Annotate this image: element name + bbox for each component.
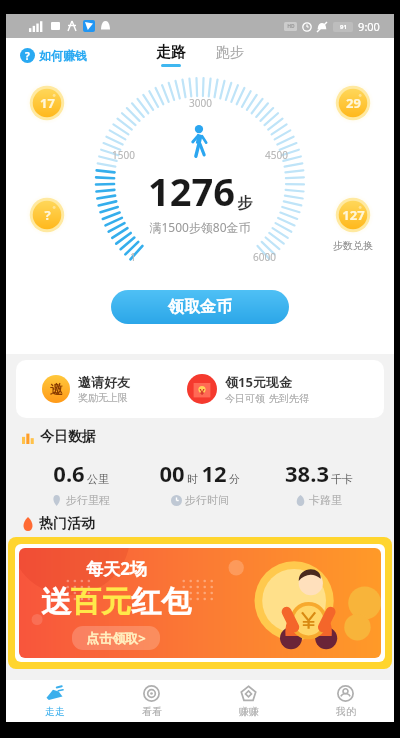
staticText: 送 bbox=[41, 583, 71, 621]
staticText: 先到先得 bbox=[269, 392, 309, 405]
staticText: 奖励无上限 bbox=[78, 391, 128, 404]
button[interactable]: 金币 29 bbox=[332, 82, 374, 124]
staticText: 4500 bbox=[265, 148, 288, 162]
staticText: 12 bbox=[201, 458, 227, 488]
staticText: 91 bbox=[340, 23, 347, 31]
staticText: 步 bbox=[237, 194, 252, 213]
button[interactable]: 金币 17 bbox=[26, 82, 68, 124]
staticText: 今日可领 bbox=[225, 392, 265, 405]
staticText: 每天2场 bbox=[86, 557, 147, 580]
staticText: 6000 bbox=[253, 250, 276, 264]
staticText: 我的 bbox=[336, 705, 356, 718]
button[interactable]: 38.3 bbox=[259, 458, 378, 507]
staticText: 走走 bbox=[45, 705, 65, 718]
staticText: 1276 bbox=[148, 165, 235, 217]
staticText: ? bbox=[25, 49, 30, 63]
button[interactable]: 邀 bbox=[16, 360, 187, 418]
staticText: 分 bbox=[229, 472, 240, 486]
staticText: 点击领取> bbox=[86, 629, 146, 647]
staticText: 00 bbox=[159, 458, 185, 488]
staticText: 如何赚钱 bbox=[39, 48, 87, 63]
staticText: 看看 bbox=[142, 705, 162, 718]
button[interactable]: 走路 bbox=[156, 43, 186, 67]
staticText: 热门活动 bbox=[39, 515, 95, 533]
button[interactable]: 走走 bbox=[6, 680, 103, 722]
staticText: 邀请好友 bbox=[78, 374, 130, 390]
staticText: 38.3 bbox=[285, 458, 329, 488]
button[interactable]: 我的 bbox=[297, 680, 394, 722]
button[interactable]: 金币 ? bbox=[26, 194, 68, 236]
button[interactable]: 赚赚 bbox=[200, 680, 297, 722]
staticText: 千卡 bbox=[331, 472, 353, 486]
staticText: 127 bbox=[342, 206, 365, 224]
staticText: 卡路里 bbox=[309, 493, 342, 507]
staticText: 29 bbox=[346, 94, 361, 112]
staticText: 步行里程 bbox=[66, 493, 110, 507]
staticText: 0.6 bbox=[53, 458, 85, 488]
button[interactable]: ¥ bbox=[187, 360, 384, 418]
staticText: ? bbox=[44, 206, 51, 224]
staticText: 走路 bbox=[156, 43, 186, 62]
button[interactable]: 领取金币 bbox=[111, 290, 289, 324]
button[interactable]: 0.6 bbox=[22, 458, 140, 507]
staticText: 领取金币 bbox=[168, 297, 232, 317]
staticText: 1 bbox=[130, 250, 136, 264]
staticText: 邀 bbox=[50, 381, 63, 397]
staticText: 3000 bbox=[189, 96, 212, 110]
button[interactable]: ? bbox=[20, 48, 87, 63]
staticText: HD bbox=[287, 23, 295, 30]
staticText: 17 bbox=[40, 94, 55, 112]
button[interactable]: 00 bbox=[140, 458, 259, 507]
button[interactable]: 跑步 bbox=[216, 44, 244, 66]
staticText: 1500 bbox=[112, 148, 135, 162]
staticText: 领15元现金 bbox=[225, 373, 292, 391]
button[interactable]: 金币 127 bbox=[332, 194, 374, 236]
staticText: 步行时间 bbox=[185, 493, 229, 507]
staticText: 赚赚 bbox=[239, 705, 259, 718]
staticText: 百元 bbox=[71, 583, 131, 621]
staticText: 时 bbox=[187, 472, 198, 486]
staticText: 今日数据 bbox=[40, 428, 96, 446]
staticText: 步数兑换 bbox=[333, 239, 373, 252]
staticText: 公里 bbox=[87, 472, 109, 486]
staticText: 红包 bbox=[131, 583, 191, 621]
button[interactable]: 每天2场 bbox=[8, 537, 392, 669]
staticText: 满1500步领80金币 bbox=[149, 219, 251, 235]
staticText: 跑步 bbox=[216, 44, 244, 62]
staticText: 9:00 bbox=[358, 19, 380, 34]
staticText: ¥ bbox=[199, 385, 205, 397]
button[interactable]: 看看 bbox=[103, 680, 200, 722]
